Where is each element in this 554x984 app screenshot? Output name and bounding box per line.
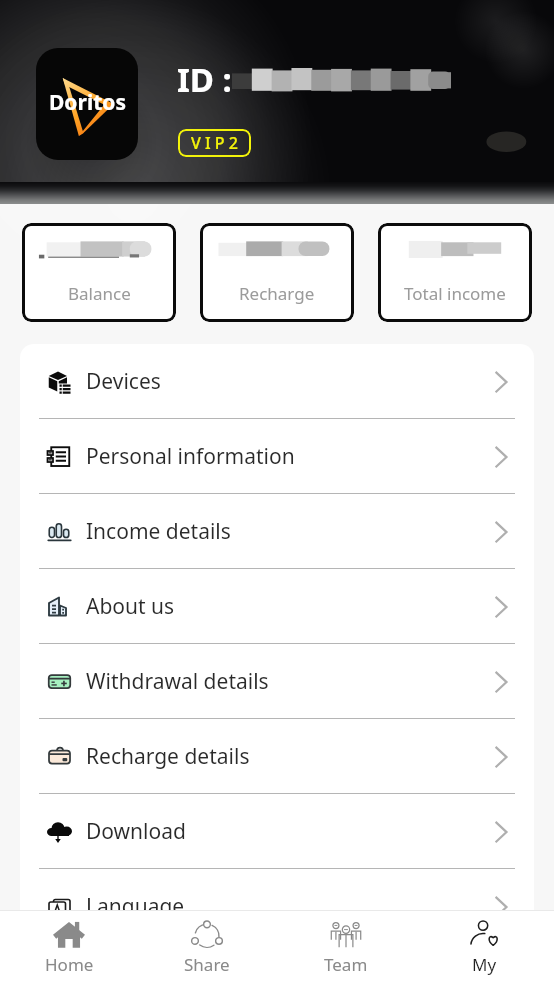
button[interactable]: Withdrawal details xyxy=(20,644,534,718)
button[interactable]: About us xyxy=(20,569,534,643)
staticText: About us xyxy=(86,592,175,621)
staticText: Team xyxy=(324,953,368,976)
button[interactable]: Share xyxy=(138,914,276,982)
staticText: Share xyxy=(184,953,230,976)
button[interactable]: Recharge xyxy=(200,223,354,322)
staticText: Withdrawal details xyxy=(86,667,269,696)
staticText: V I P 2 xyxy=(191,132,238,154)
button[interactable]: Balance xyxy=(22,223,176,322)
staticText: Home xyxy=(45,953,94,976)
staticText: Income details xyxy=(86,517,231,546)
button[interactable]: Income details xyxy=(20,494,534,568)
staticText: My xyxy=(472,953,497,976)
button[interactable]: Personal information xyxy=(20,419,534,493)
staticText: ID : xyxy=(177,57,232,102)
button[interactable]: Home xyxy=(0,914,138,982)
staticText: Total income xyxy=(404,282,506,305)
button[interactable]: Language xyxy=(20,869,534,943)
button[interactable]: My xyxy=(415,914,554,982)
staticText: Balance xyxy=(68,282,131,305)
button[interactable]: Profile avatar xyxy=(36,48,138,160)
staticText: Language xyxy=(86,892,185,921)
button[interactable]: Total income xyxy=(378,223,532,322)
staticText: Doritos xyxy=(49,88,126,117)
staticText: Recharge details xyxy=(86,742,250,771)
staticText: Devices xyxy=(86,367,161,396)
staticText: Download xyxy=(86,817,186,846)
staticText: Recharge xyxy=(239,282,315,305)
button[interactable]: Download xyxy=(20,794,534,868)
staticText: Personal information xyxy=(86,442,295,471)
button[interactable]: Devices xyxy=(20,344,534,418)
button[interactable]: Recharge details xyxy=(20,719,534,793)
button[interactable]: Team xyxy=(276,914,415,982)
button[interactable]: V I P 2 xyxy=(178,129,251,157)
